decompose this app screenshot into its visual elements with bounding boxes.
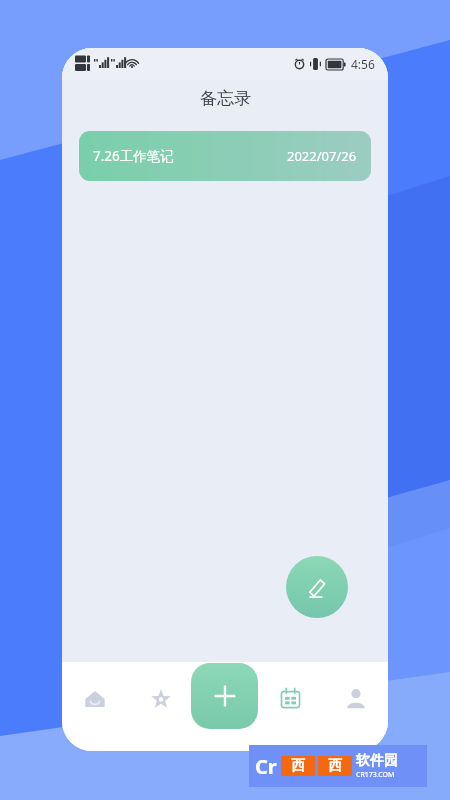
- staticText: 软件园: [356, 752, 398, 770]
- staticText: 2022/07/26: [287, 147, 357, 165]
- staticText: 4:56: [351, 56, 375, 72]
- button[interactable]: 7.26工作笔记: [79, 131, 371, 181]
- staticText: Cr: [255, 753, 277, 780]
- button[interactable]: Profile: [323, 662, 388, 751]
- button[interactable]: Home: [62, 662, 128, 751]
- staticText: CR173.COM: [356, 770, 395, 780]
- button[interactable]: Favorites: [128, 662, 193, 751]
- staticText: 西: [291, 757, 305, 775]
- staticText: 西: [328, 757, 342, 775]
- button[interactable]: Add: [191, 663, 258, 729]
- staticText: 备忘录: [200, 88, 251, 109]
- staticText: 7.26工作笔记: [93, 147, 174, 165]
- button[interactable]: New note: [286, 556, 348, 618]
- button[interactable]: Calendar: [258, 662, 323, 751]
